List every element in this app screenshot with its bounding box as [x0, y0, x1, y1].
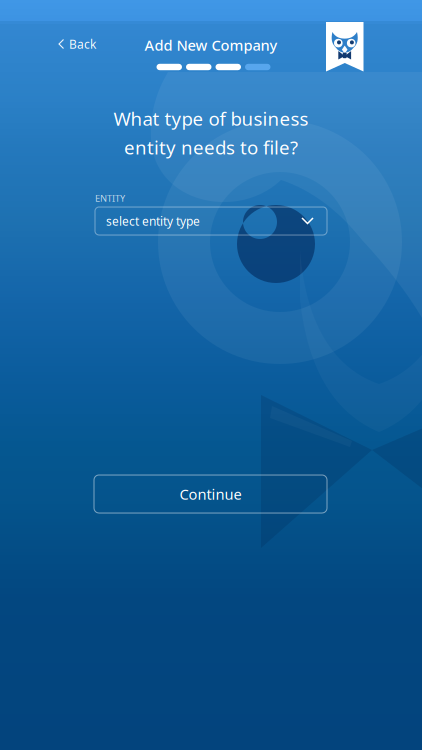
button[interactable]: Back: [50, 27, 105, 61]
staticText: select entity type: [106, 213, 200, 229]
staticText: entity needs to file?: [124, 135, 298, 160]
button[interactable]: select entity type: [95, 207, 327, 235]
staticText: Continue: [179, 484, 241, 504]
staticText: ENTITY: [95, 192, 125, 204]
staticText: What type of business: [113, 106, 308, 131]
staticText: Back: [69, 36, 96, 52]
staticText: Add New Company: [144, 35, 277, 55]
button[interactable]: Continue: [94, 475, 327, 513]
